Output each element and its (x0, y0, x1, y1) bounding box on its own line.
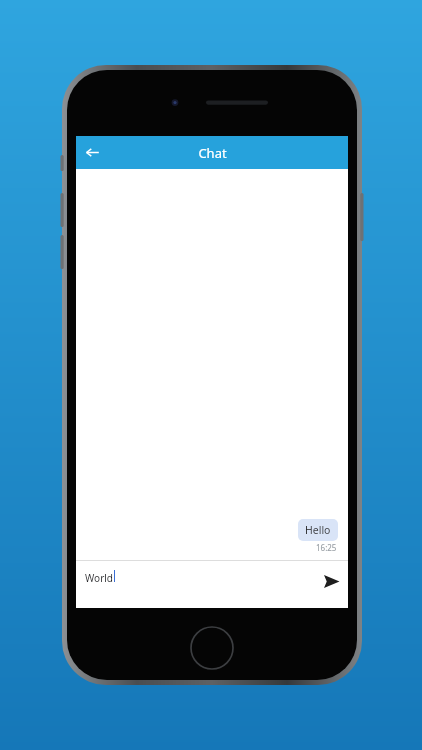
button[interactable]: Back (76, 136, 109, 169)
button[interactable]: Hello (298, 519, 338, 541)
staticText: World (85, 571, 114, 585)
staticText: Hello (305, 523, 331, 537)
button[interactable]: Send (314, 564, 348, 598)
staticText: 16:25 (316, 542, 337, 553)
button[interactable]: World (76, 561, 314, 593)
staticText: Chat (198, 144, 227, 162)
